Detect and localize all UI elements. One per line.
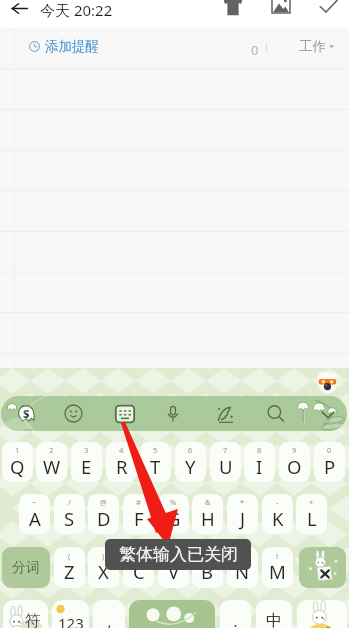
staticText: 9 xyxy=(292,445,297,455)
button[interactable]: 123 xyxy=(52,600,89,628)
button[interactable]: Emoji xyxy=(57,397,89,430)
staticText: ~ xyxy=(32,497,37,507)
button[interactable]: 8 xyxy=(244,442,275,482)
button[interactable]: Sogou input xyxy=(1,396,347,431)
staticText: 6 xyxy=(188,445,193,455)
button[interactable]: Sogou input xyxy=(10,397,42,430)
button[interactable]: Keyboard layout xyxy=(109,397,141,430)
button[interactable]: 工作 xyxy=(299,35,334,57)
button[interactable]: + xyxy=(296,494,327,534)
staticText: W xyxy=(43,454,61,479)
staticText: L xyxy=(307,506,317,531)
staticText: 2 xyxy=(49,445,54,455)
button[interactable]: - xyxy=(262,494,293,534)
staticText: , xyxy=(107,611,112,628)
staticText: " xyxy=(172,551,176,561)
button[interactable]: ~ xyxy=(19,494,50,534)
staticText: C xyxy=(133,559,145,584)
staticText: A xyxy=(29,506,41,531)
button[interactable]: * xyxy=(227,494,258,534)
button[interactable]: # xyxy=(123,494,154,534)
button[interactable]: Space xyxy=(129,600,215,628)
button[interactable]: Assistant pet xyxy=(318,372,337,394)
button[interactable]: 3 xyxy=(71,442,102,482)
button[interactable]: 4 xyxy=(106,442,137,482)
button[interactable]: 0 xyxy=(314,442,345,482)
staticText: F xyxy=(134,506,144,531)
button[interactable]: . xyxy=(220,600,251,628)
button[interactable]: Handwriting xyxy=(209,397,241,430)
staticText: K xyxy=(272,506,284,531)
staticText: 添加提醒 xyxy=(45,38,99,55)
button[interactable]: 7 xyxy=(210,442,241,482)
button[interactable]: Voice input xyxy=(157,397,189,430)
button[interactable]: Hide keyboard xyxy=(312,397,344,430)
button[interactable]: 9 xyxy=(279,442,310,482)
button[interactable]: ' xyxy=(123,547,154,588)
staticText: I xyxy=(256,454,263,479)
staticText: O xyxy=(287,454,302,479)
button[interactable]: & xyxy=(192,494,223,534)
button[interactable]: ! xyxy=(262,547,293,588)
staticText: P xyxy=(324,454,336,479)
button[interactable]: Theme xyxy=(218,0,247,20)
staticText: D xyxy=(97,506,111,531)
staticText: 0 xyxy=(251,41,259,59)
staticText: 5 xyxy=(153,445,158,455)
staticText: J xyxy=(240,506,246,531)
staticText: 工作 xyxy=(299,38,326,55)
button[interactable]: Enter xyxy=(297,600,347,628)
button[interactable]: ; xyxy=(227,547,258,588)
staticText: U xyxy=(219,454,233,479)
staticText: V xyxy=(168,559,180,584)
button[interactable]: 添加提醒 xyxy=(29,35,99,57)
button[interactable]: 5 xyxy=(140,442,171,482)
staticText: 分词 xyxy=(12,559,40,577)
staticText: : xyxy=(206,551,209,561)
button[interactable]: @ xyxy=(88,494,119,534)
staticText: 3 xyxy=(84,445,89,455)
staticText: + xyxy=(309,497,314,507)
staticText: / xyxy=(68,497,71,507)
staticText: ' xyxy=(138,551,140,561)
button[interactable]: ) xyxy=(88,547,119,588)
button[interactable]: Search xyxy=(259,397,291,430)
staticText: Y xyxy=(185,454,196,479)
staticText: 繁体输入已关闭 xyxy=(119,544,238,565)
staticText: 1 xyxy=(15,445,20,455)
staticText: N xyxy=(235,559,250,584)
staticText: 123 xyxy=(58,613,84,628)
button[interactable]: % xyxy=(158,494,189,534)
staticText: 今天 20:22 xyxy=(40,0,113,20)
button[interactable]: Insert image xyxy=(266,0,295,19)
staticText: M xyxy=(269,559,286,584)
button[interactable]: 分词 xyxy=(2,547,50,588)
button[interactable]: Done xyxy=(314,0,343,20)
staticText: . xyxy=(233,611,238,628)
button[interactable]: Delete xyxy=(299,547,346,588)
staticText: X xyxy=(98,559,109,584)
button[interactable]: 1 xyxy=(2,442,33,482)
staticText: B xyxy=(201,559,214,584)
button[interactable]: 6 xyxy=(175,442,206,482)
button[interactable]: " xyxy=(158,547,189,588)
button[interactable]: Back xyxy=(5,0,33,22)
button[interactable]: : xyxy=(192,547,223,588)
staticText: R xyxy=(116,454,128,479)
button[interactable]: 中 xyxy=(256,600,292,628)
button[interactable]: ( xyxy=(54,547,85,588)
staticText: Z xyxy=(64,559,75,584)
staticText: Q xyxy=(10,454,25,479)
staticText: T xyxy=(150,454,161,479)
button[interactable]: , xyxy=(93,600,125,628)
staticText: S xyxy=(23,406,30,421)
staticText: 中 xyxy=(266,611,282,628)
button[interactable]: 2 xyxy=(36,442,67,482)
staticText: & xyxy=(205,497,211,507)
staticText: 7 xyxy=(223,445,228,455)
staticText: - xyxy=(276,497,279,507)
staticText: # xyxy=(136,497,141,507)
button[interactable]: Symbols xyxy=(3,600,48,628)
button[interactable]: / xyxy=(54,494,85,534)
